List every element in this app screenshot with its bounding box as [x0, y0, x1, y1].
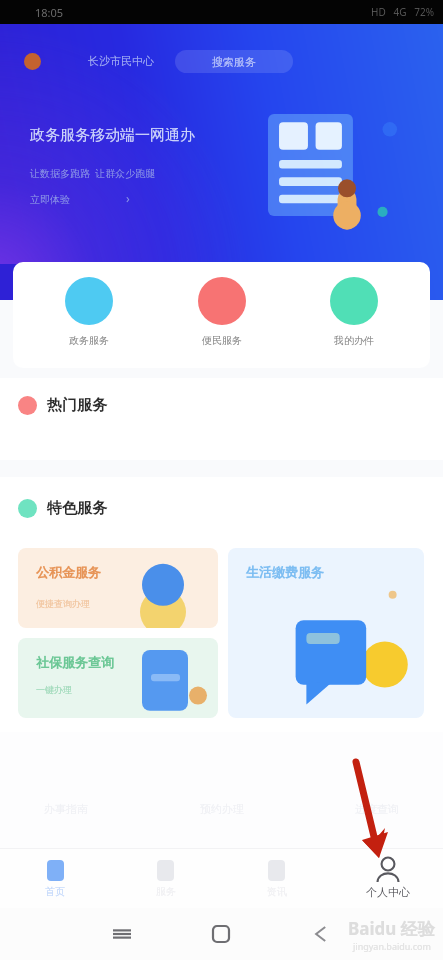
button[interactable]: Back [314, 927, 328, 941]
staticText: 社保服务查询 [36, 654, 114, 670]
staticText: 让数据多跑路 让群众少跑腿 [30, 166, 156, 180]
staticText: 立即体验 [30, 193, 70, 206]
staticText: 搜索服务 [212, 55, 256, 69]
staticText: 长沙市民中心 [88, 54, 154, 68]
staticText: 资讯 [267, 885, 287, 898]
button[interactable]: 搜索服务 [175, 50, 293, 73]
button[interactable]: Recent apps [113, 925, 131, 943]
button[interactable]: 我的办件 [322, 277, 386, 347]
button[interactable]: 生活缴费服务 [228, 548, 424, 718]
staticText: 便民服务 [202, 334, 242, 347]
staticText: 服务 [156, 885, 176, 898]
staticText: 生活缴费服务 [246, 564, 324, 580]
button[interactable]: 资讯 [221, 849, 332, 908]
button[interactable]: 首页 [0, 849, 110, 908]
staticText: 热门服务 [47, 396, 107, 415]
button[interactable]: App logo [24, 53, 41, 70]
button[interactable]: 政务服务 [57, 277, 121, 347]
staticText: jingyan.baidu.com [353, 940, 431, 952]
button[interactable]: 个人中心 [332, 849, 443, 908]
staticText: Baidu 经验 [348, 917, 435, 940]
button[interactable]: 便民服务 [190, 277, 254, 347]
staticText: 进度查询 [355, 802, 399, 816]
staticText: 办事指南 [44, 802, 88, 816]
staticText: 18:05 [35, 5, 64, 20]
staticText: 特色服务 [47, 499, 107, 518]
staticText: HD 4G 72% [371, 5, 435, 19]
button[interactable]: Home [213, 926, 229, 942]
button[interactable]: 公积金服务 [18, 548, 218, 628]
button[interactable]: 特色服务 [18, 499, 107, 518]
staticText: 首页 [45, 885, 65, 898]
staticText: › [126, 190, 130, 206]
staticText: 政务服务移动端一网通办 [30, 126, 195, 145]
staticText: 我的办件 [334, 334, 374, 347]
button[interactable]: 热门服务 [18, 396, 107, 415]
button[interactable]: 社保服务查询 [18, 638, 218, 718]
staticText: 预约办理 [200, 802, 244, 816]
staticText: 一键办理 [36, 684, 72, 695]
button[interactable]: 服务 [110, 849, 221, 908]
staticText: 政务服务 [69, 334, 109, 347]
staticText: 个人中心 [366, 885, 410, 899]
staticText: 便捷查询办理 [36, 598, 90, 609]
staticText: 公积金服务 [36, 564, 101, 580]
